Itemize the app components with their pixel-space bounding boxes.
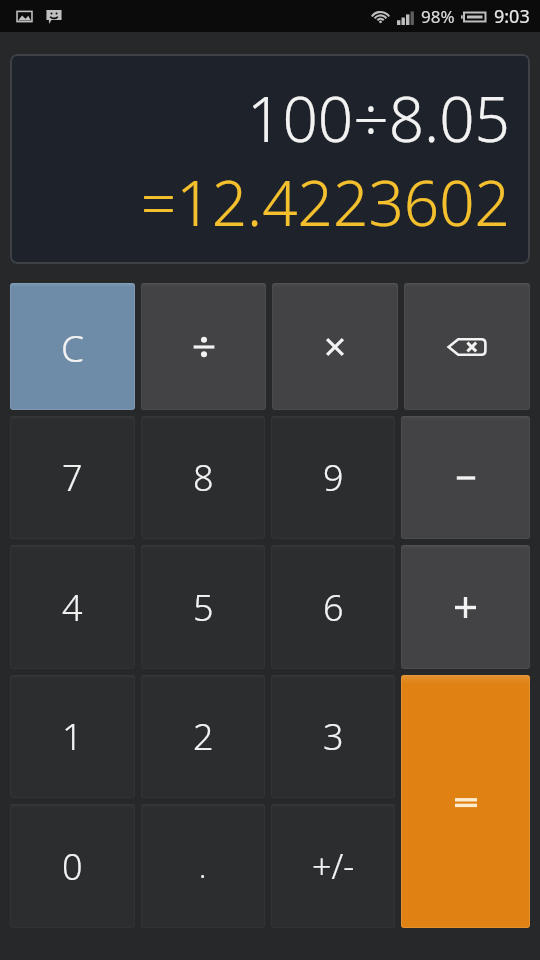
staticText: 7 (62, 453, 83, 502)
button[interactable]: 0 (10, 804, 135, 928)
button[interactable]: 8 (141, 416, 265, 539)
button[interactable]: Equals (401, 675, 530, 928)
button[interactable]: Backspace (404, 283, 530, 410)
button[interactable]: 7 (10, 416, 135, 539)
staticText: 98% (421, 5, 455, 28)
button[interactable]: 2 (141, 675, 265, 798)
staticText: 6 (323, 583, 344, 632)
button[interactable]: 6 (271, 545, 395, 669)
staticText: . (199, 846, 207, 887)
staticText: 8 (193, 453, 214, 502)
staticText: 1 (62, 712, 83, 761)
button[interactable]: Multiply (272, 283, 398, 410)
button[interactable]: +/- (271, 804, 395, 928)
button[interactable]: 9 (271, 416, 395, 539)
staticText: 0 (62, 842, 83, 891)
button[interactable]: 4 (10, 545, 135, 669)
staticText: 9:03 (494, 4, 530, 29)
staticText: 2 (193, 712, 214, 761)
staticText: 4 (62, 583, 83, 632)
button[interactable]: 5 (141, 545, 265, 669)
button[interactable]: Divide (141, 283, 266, 410)
staticText: 5 (193, 583, 214, 632)
button[interactable]: 3 (271, 675, 395, 798)
staticText: +/- (312, 843, 355, 889)
button[interactable]: . (141, 804, 265, 928)
staticText: 3 (323, 712, 344, 761)
button[interactable]: C (10, 283, 135, 410)
staticText: 100÷8.05 (247, 76, 510, 160)
staticText: =12.4223602 (140, 160, 510, 244)
staticText: C (61, 322, 85, 372)
staticText: 9 (323, 453, 344, 502)
button[interactable]: 1 (10, 675, 135, 798)
button[interactable]: Minus (401, 416, 530, 539)
button[interactable]: Plus (401, 545, 530, 669)
